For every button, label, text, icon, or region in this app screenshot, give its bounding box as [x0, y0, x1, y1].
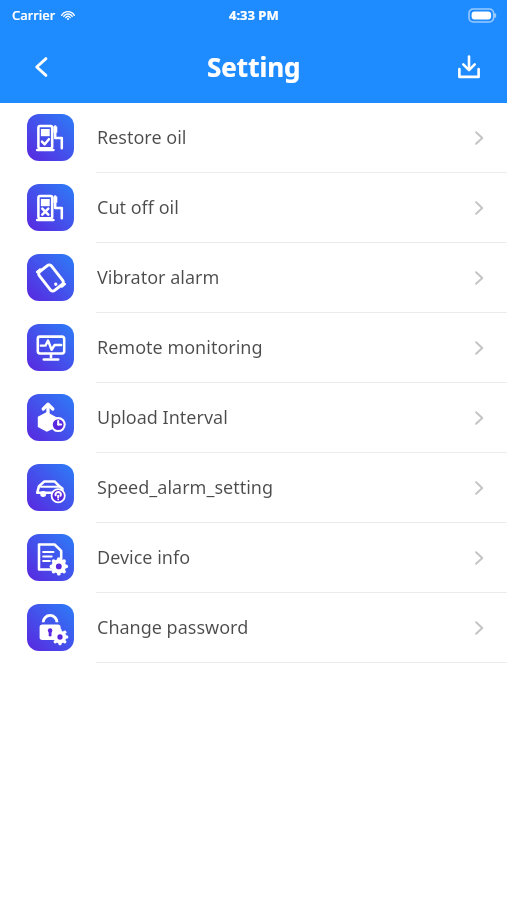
- staticText: Speed_alarm_setting: [97, 475, 274, 500]
- button[interactable]: Cut off oil: [0, 173, 507, 243]
- button[interactable]: Download: [447, 45, 491, 89]
- staticText: 4:33 PM: [229, 6, 279, 24]
- button[interactable]: Vibrator alarm: [0, 243, 507, 313]
- staticText: Carrier: [12, 6, 56, 24]
- button[interactable]: Change password: [0, 593, 507, 663]
- button[interactable]: Upload Interval: [0, 383, 507, 453]
- button[interactable]: Back: [20, 45, 64, 89]
- staticText: Vibrator alarm: [97, 265, 220, 290]
- staticText: Cut off oil: [97, 195, 179, 220]
- staticText: Setting: [207, 49, 301, 84]
- button[interactable]: Speed_alarm_setting: [0, 453, 507, 523]
- button[interactable]: Remote monitoring: [0, 313, 507, 383]
- staticText: Change password: [97, 615, 249, 640]
- staticText: Device info: [97, 545, 191, 570]
- button[interactable]: Device info: [0, 523, 507, 593]
- staticText: Remote monitoring: [97, 335, 263, 360]
- button[interactable]: Restore oil: [0, 103, 507, 173]
- staticText: Upload Interval: [97, 405, 228, 430]
- staticText: Restore oil: [97, 125, 187, 150]
